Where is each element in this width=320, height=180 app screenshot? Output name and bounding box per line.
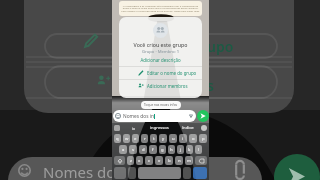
staticText: b (168, 158, 171, 164)
staticText: Editar o nome do grupo (147, 70, 197, 76)
button[interactable]: b (165, 156, 173, 165)
button[interactable]: m (185, 156, 193, 165)
button[interactable]: a (119, 145, 127, 154)
staticText: ingressos (150, 125, 169, 131)
button[interactable]: w (123, 134, 130, 143)
button[interactable]: l (195, 145, 202, 154)
button[interactable]: Toque nas novas infos (141, 101, 181, 109)
staticText: p (202, 136, 205, 142)
button[interactable]: Espaço (138, 167, 181, 179)
button[interactable]: t (150, 134, 157, 143)
button[interactable]: u (169, 134, 177, 143)
staticText: e (134, 136, 137, 142)
staticText: c (148, 158, 151, 164)
staticText: Você criou este grupo (119, 41, 202, 48)
button[interactable]: Apagar (195, 156, 207, 165)
staticText: h (170, 147, 173, 153)
button[interactable]: v (155, 156, 163, 165)
staticText: ix (132, 126, 135, 131)
button[interactable]: Enter (193, 167, 207, 179)
other: Anexar (188, 113, 194, 119)
staticText: d (142, 147, 145, 153)
button[interactable]: p (199, 134, 207, 143)
button[interactable]: q (114, 134, 121, 143)
staticText: i (182, 136, 184, 142)
staticText: t (153, 136, 155, 142)
button[interactable]: Enviar (197, 110, 209, 122)
staticText: z (130, 158, 132, 164)
staticText: g (161, 147, 164, 153)
staticText: Toque nas novas infos (144, 103, 178, 107)
staticText: s (132, 147, 135, 153)
button[interactable]: h (168, 145, 175, 154)
staticText: u (172, 136, 175, 142)
staticText: Nomes dos in (123, 113, 154, 120)
staticText: x (138, 158, 141, 164)
button[interactable]: Nomes dos in (113, 110, 196, 122)
button[interactable]: f (149, 145, 157, 154)
button[interactable]: Números (114, 167, 126, 179)
button[interactable]: x (136, 156, 143, 165)
staticText: Adicionar membros (147, 83, 188, 89)
button[interactable]: r (141, 134, 148, 143)
staticText: w (125, 136, 129, 142)
button[interactable]: o (189, 134, 197, 143)
button[interactable]: g (159, 145, 166, 154)
button[interactable]: k (186, 145, 193, 154)
staticText: j (180, 147, 182, 153)
button[interactable]: y (159, 134, 167, 143)
staticText: f (152, 147, 154, 153)
staticText: a (122, 147, 125, 153)
staticText: Nomes do (43, 162, 116, 180)
staticText: r (144, 136, 146, 142)
staticText: y (162, 136, 165, 142)
staticText: As mensagens e as chamadas são protegida… (121, 4, 200, 13)
staticText: Grupo · Membro: 1 (119, 49, 202, 55)
button[interactable]: z (127, 156, 134, 165)
button[interactable]: Emoji (114, 125, 120, 131)
button[interactable]: Adicionar membros (119, 80, 202, 92)
button[interactable]: e (132, 134, 139, 143)
button[interactable]: Ponto (183, 167, 191, 179)
button[interactable]: d (139, 145, 147, 154)
staticText: s (207, 76, 214, 95)
staticText: v (158, 158, 161, 164)
staticText: índice (182, 125, 194, 131)
button[interactable]: Mais (201, 125, 207, 131)
staticText: n (178, 158, 181, 164)
button[interactable]: i (179, 134, 187, 143)
staticText: k (188, 147, 191, 153)
button[interactable]: j (177, 145, 184, 154)
button[interactable]: c (145, 156, 153, 165)
button[interactable]: s (129, 145, 137, 154)
button[interactable]: n (175, 156, 183, 165)
button[interactable]: Adicionar descrição (119, 57, 202, 63)
staticText: l (198, 147, 200, 153)
staticText: m (187, 158, 191, 164)
staticText: upo (207, 37, 234, 56)
staticText: q (116, 136, 119, 142)
button[interactable]: Editar o nome do grupo (119, 67, 202, 79)
staticText: o (192, 136, 195, 142)
button[interactable]: Vírgula (128, 167, 136, 179)
button[interactable]: Shift (114, 156, 125, 165)
